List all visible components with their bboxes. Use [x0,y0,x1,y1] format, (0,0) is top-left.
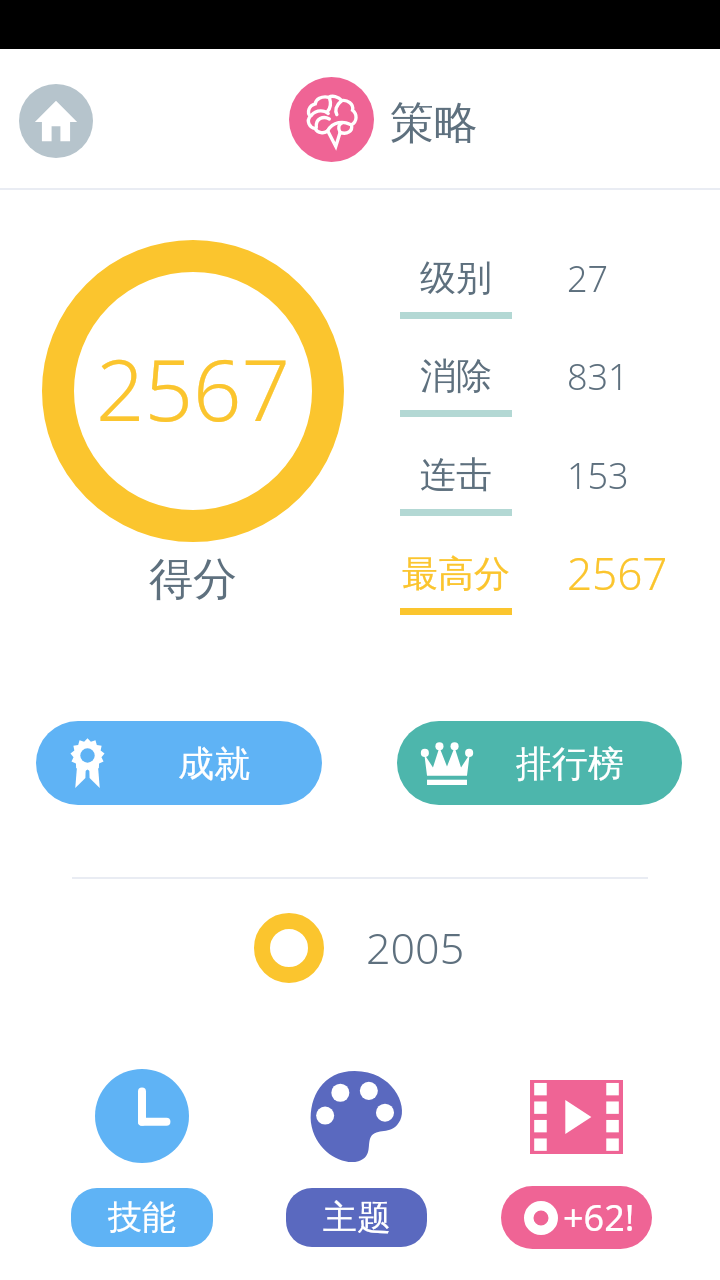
button[interactable]: 成就 [36,721,322,805]
staticText: 策略 [390,96,478,151]
button[interactable]: +62! [501,1069,652,1249]
button[interactable]: 技能 [71,1069,213,1247]
staticText: +62! [563,1193,635,1242]
staticText: 技能 [108,1196,176,1239]
button[interactable]: 最高分 [390,545,690,643]
staticText: 2567 [567,543,668,603]
button[interactable]: 排行榜 [397,721,682,805]
staticText: 2567 [96,330,291,446]
staticText: 153 [567,451,629,500]
staticText: 主题 [323,1196,391,1239]
button[interactable]: Home [19,84,93,158]
staticText: 831 [567,352,629,401]
staticText: 排行榜 [516,741,624,786]
button[interactable]: 连击 [390,446,690,544]
staticText: 成就 [178,741,250,786]
staticText: 得分 [149,552,237,607]
button[interactable]: 级别 [390,249,690,347]
staticText: 27 [567,254,609,303]
button[interactable]: 消除 [390,347,690,445]
staticText: 消除 [420,353,492,398]
button[interactable]: 主题 [286,1069,427,1247]
staticText: 2005 [366,918,465,977]
staticText: 最高分 [402,551,510,596]
staticText: 连击 [420,452,492,497]
staticText: 级别 [420,255,492,300]
